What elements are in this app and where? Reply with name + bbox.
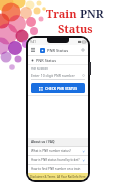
staticText: 9:41 <box>30 40 36 44</box>
staticText: Train <box>46 6 80 21</box>
staticText: All Your Rail Info Here <box>57 175 86 179</box>
staticText: PNR NUMBER <box>31 67 48 71</box>
button[interactable]: Enter 10 digit PNR number <box>31 72 85 79</box>
staticText: What is PNR number status? <box>31 149 71 153</box>
staticText: PNR <box>80 6 104 21</box>
button[interactable]: Disclaimer & Terms <box>30 175 56 179</box>
button[interactable]: Settings <box>80 47 86 53</box>
staticText: Enter 10 digit PNR number <box>31 73 75 78</box>
staticText: How is PNR status found by ticket? <box>31 158 80 162</box>
button[interactable]: What is PNR number status? <box>28 147 88 155</box>
button[interactable]: CHECK PNR STATUS <box>31 83 85 93</box>
staticText: PNR Status <box>47 48 69 53</box>
button[interactable]: How to find PNR number on a train ticket… <box>28 165 88 173</box>
button[interactable]: PNR Status <box>28 56 88 64</box>
staticText: CHECK PNR STATUS <box>45 86 78 91</box>
button[interactable]: All Your Rail Info Here <box>57 175 86 179</box>
staticText: Status <box>58 21 93 36</box>
button[interactable]: Menu <box>30 47 36 53</box>
staticText: Disclaimer & Terms <box>30 175 56 179</box>
button[interactable]: How is PNR status found by ticket? <box>28 156 88 164</box>
staticText: About us / FAQ <box>31 140 55 144</box>
staticText: PNR Status <box>36 58 57 63</box>
staticText: How to find PNR number on a train ticket… <box>31 167 85 171</box>
